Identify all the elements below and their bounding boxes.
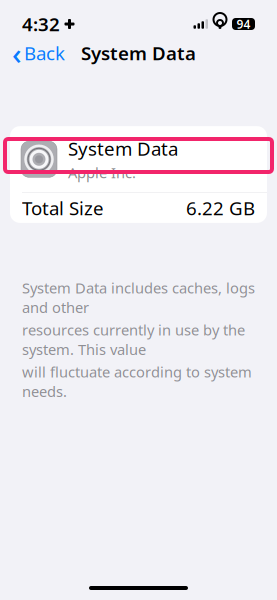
button[interactable]: ‹ [8, 28, 69, 77]
staticText: 6.22 GB [186, 195, 255, 220]
staticText: 94 [236, 16, 250, 32]
staticText: System Data [68, 136, 178, 161]
staticText: will fluctuate according to system needs… [22, 362, 252, 401]
staticText: Apple Inc. [68, 163, 136, 182]
button[interactable]: Total Size [10, 193, 267, 223]
staticText: System Data [81, 41, 196, 65]
staticText: Total Size [22, 195, 104, 220]
staticText: Back [24, 41, 65, 65]
staticText: resources currently in use by the system… [22, 320, 245, 359]
staticText: System Data includes caches, logs and ot… [22, 278, 255, 317]
staticText: ‹ [12, 33, 22, 72]
staticText: 4:32 [22, 12, 60, 36]
